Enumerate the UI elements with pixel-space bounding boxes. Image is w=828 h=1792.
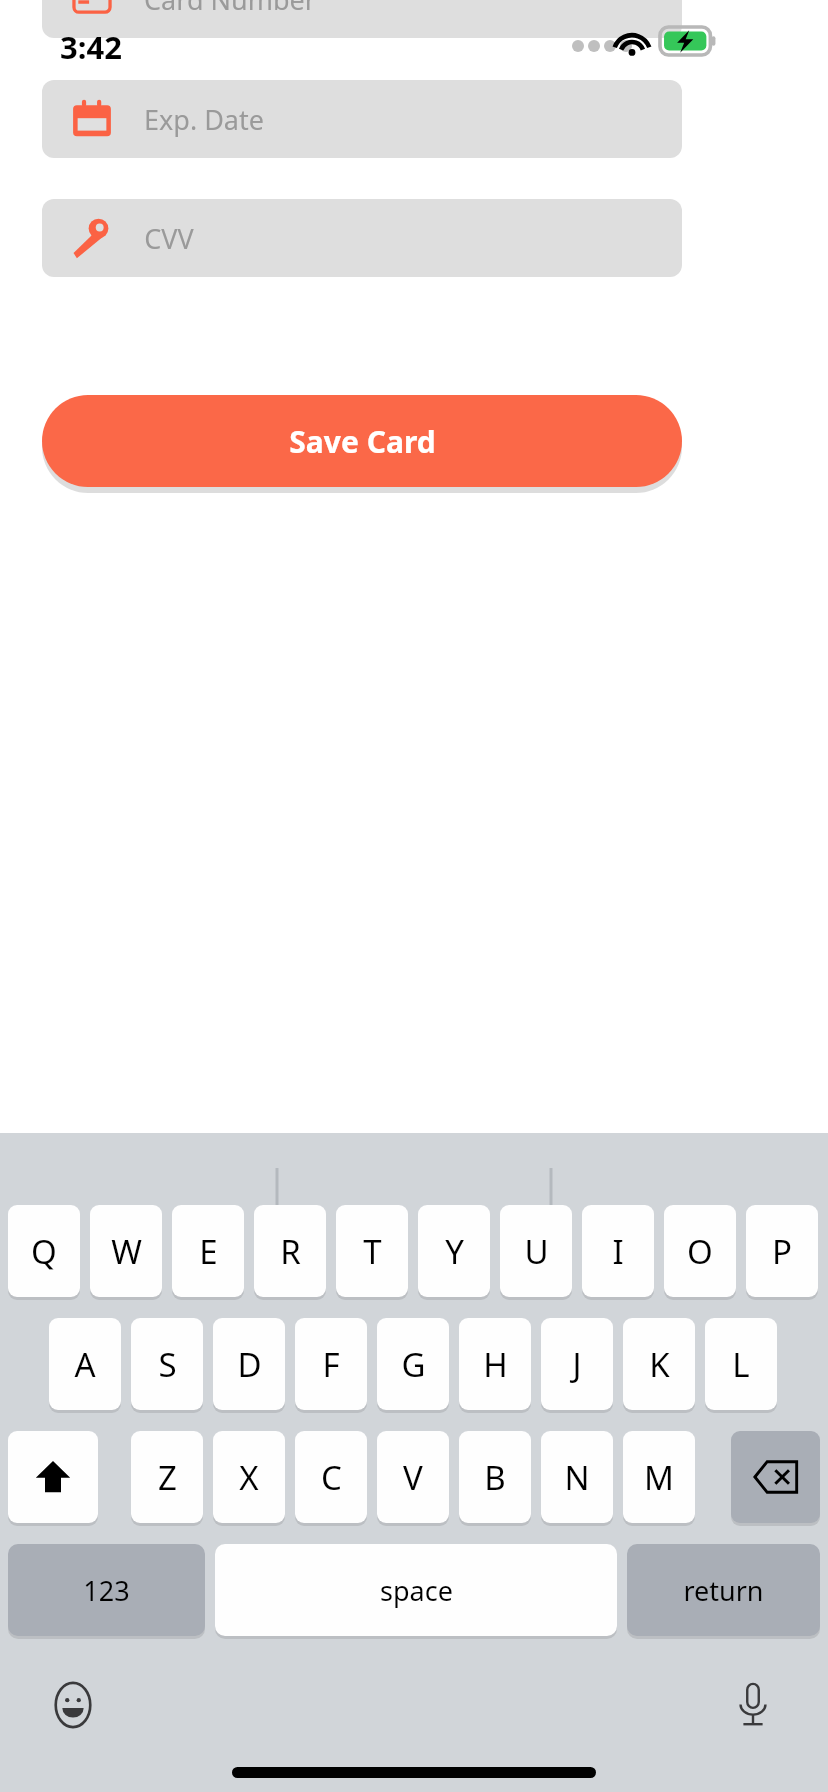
staticText: R xyxy=(280,1229,301,1274)
button[interactable]: C xyxy=(295,1431,367,1523)
button[interactable]: N xyxy=(541,1431,613,1523)
staticText: V xyxy=(403,1455,423,1500)
button[interactable]: Exp. Date xyxy=(42,80,682,158)
button[interactable]: Save Card xyxy=(42,395,682,487)
button[interactable]: Z xyxy=(131,1431,203,1523)
staticText: K xyxy=(649,1342,670,1387)
button[interactable]: 123 xyxy=(8,1544,205,1636)
button[interactable]: E xyxy=(172,1205,244,1297)
staticText: G xyxy=(401,1342,426,1387)
staticText: W xyxy=(111,1229,142,1274)
button[interactable]: Voice input xyxy=(724,1676,782,1734)
staticText: Save Card xyxy=(289,421,436,462)
button[interactable]: Emoji keyboard xyxy=(44,1676,102,1734)
staticText: S xyxy=(158,1342,177,1387)
staticText: Card Number xyxy=(144,0,316,18)
button[interactable]: I xyxy=(582,1205,654,1297)
button[interactable]: return xyxy=(627,1544,820,1636)
button[interactable]: W xyxy=(90,1205,162,1297)
button[interactable]: T xyxy=(336,1205,408,1297)
staticText: U xyxy=(524,1229,549,1274)
other: Backspace xyxy=(731,1431,820,1523)
staticText: C xyxy=(321,1455,342,1500)
staticText: D xyxy=(237,1342,262,1387)
button[interactable] xyxy=(731,1431,820,1523)
staticText: X xyxy=(239,1455,259,1500)
button[interactable]: X xyxy=(213,1431,285,1523)
staticText: F xyxy=(322,1342,340,1387)
button[interactable]: Card Number xyxy=(42,0,682,38)
button[interactable]: H xyxy=(459,1318,531,1410)
staticText: Q xyxy=(31,1229,57,1274)
staticText: M xyxy=(644,1455,674,1500)
staticText: Y xyxy=(445,1229,464,1274)
staticText: Exp. Date xyxy=(144,101,264,138)
button[interactable]: L xyxy=(705,1318,777,1410)
button[interactable]: D xyxy=(213,1318,285,1410)
staticText: B xyxy=(484,1455,506,1500)
staticText: A xyxy=(74,1342,96,1387)
other: Shift xyxy=(8,1431,98,1523)
staticText: L xyxy=(732,1342,750,1387)
button[interactable]: F xyxy=(295,1318,367,1410)
staticText: N xyxy=(564,1455,590,1500)
button[interactable]: R xyxy=(254,1205,326,1297)
staticText: J xyxy=(572,1342,582,1387)
button[interactable]: J xyxy=(541,1318,613,1410)
button[interactable]: V xyxy=(377,1431,449,1523)
staticText: 123 xyxy=(83,1572,130,1609)
button[interactable]: M xyxy=(623,1431,695,1523)
button[interactable]: P xyxy=(746,1205,818,1297)
button[interactable]: K xyxy=(623,1318,695,1410)
button[interactable]: G xyxy=(377,1318,449,1410)
staticText: P xyxy=(772,1229,792,1274)
staticText: I xyxy=(612,1229,624,1274)
staticText: space xyxy=(380,1572,453,1609)
button[interactable]: CVV xyxy=(42,199,682,277)
staticText: H xyxy=(483,1342,508,1387)
button[interactable] xyxy=(8,1431,98,1523)
staticText: Z xyxy=(158,1455,177,1500)
button[interactable]: B xyxy=(459,1431,531,1523)
staticText: E xyxy=(199,1229,218,1274)
button[interactable]: U xyxy=(500,1205,572,1297)
staticText: CVV xyxy=(144,220,194,257)
staticText: return xyxy=(683,1572,764,1609)
staticText: 3:42 xyxy=(60,26,122,68)
button[interactable]: Q xyxy=(8,1205,80,1297)
staticText: O xyxy=(687,1229,713,1274)
button[interactable]: Y xyxy=(418,1205,490,1297)
button[interactable]: S xyxy=(131,1318,203,1410)
button[interactable]: O xyxy=(664,1205,736,1297)
button[interactable]: A xyxy=(49,1318,121,1410)
button[interactable]: space xyxy=(215,1544,617,1636)
staticText: T xyxy=(363,1229,382,1274)
